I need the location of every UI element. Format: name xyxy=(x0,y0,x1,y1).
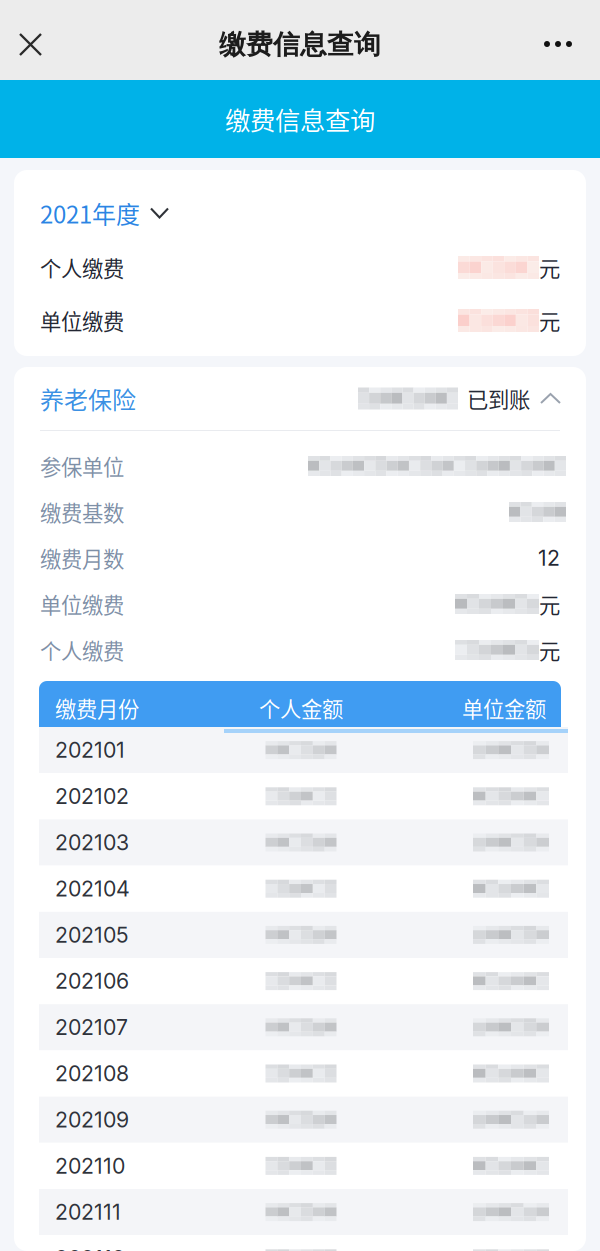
staticText: 单位缴费 xyxy=(40,305,124,336)
staticText: 单位缴费 xyxy=(40,589,124,619)
staticText: 元 xyxy=(539,305,560,336)
staticText: 202111 xyxy=(55,1199,121,1225)
button[interactable]: Close xyxy=(0,0,61,80)
staticText: 202112 xyxy=(55,1245,125,1251)
staticText: 参保单位 xyxy=(40,451,124,481)
button[interactable]: 养老保险 xyxy=(14,367,586,430)
staticText: 个人金额 xyxy=(259,693,343,723)
staticText: 202107 xyxy=(55,1014,128,1040)
staticText: 元 xyxy=(539,252,560,283)
staticText: 202110 xyxy=(55,1153,125,1179)
staticText: 个人缴费 xyxy=(40,252,124,283)
staticText: 12 xyxy=(538,545,560,571)
staticText: 2021年度 xyxy=(40,196,140,230)
staticText: 缴费信息查询 xyxy=(225,101,375,137)
staticText: 202101 xyxy=(55,737,125,763)
staticText: 缴费月份 xyxy=(55,693,139,723)
staticText: 已到账 xyxy=(467,383,530,414)
staticText: 202104 xyxy=(55,876,130,902)
staticText: 缴费信息查询 xyxy=(219,28,381,61)
staticText: 202106 xyxy=(55,968,129,994)
staticText: 202109 xyxy=(55,1107,129,1133)
staticText: 缴费月数 xyxy=(40,543,124,573)
staticText: 元 xyxy=(539,589,560,619)
button[interactable]: 2021年度 xyxy=(40,185,560,241)
staticText: 202103 xyxy=(55,830,129,855)
staticText: 缴费基数 xyxy=(40,497,124,527)
staticText: 202108 xyxy=(55,1061,129,1086)
staticText: 元 xyxy=(539,635,560,665)
staticText: 单位金额 xyxy=(462,693,546,723)
staticText: 养老保险 xyxy=(40,381,136,416)
staticText: 202102 xyxy=(55,783,129,809)
button[interactable]: More xyxy=(525,0,600,80)
staticText: 个人缴费 xyxy=(40,635,124,665)
staticText: 202105 xyxy=(55,922,129,948)
